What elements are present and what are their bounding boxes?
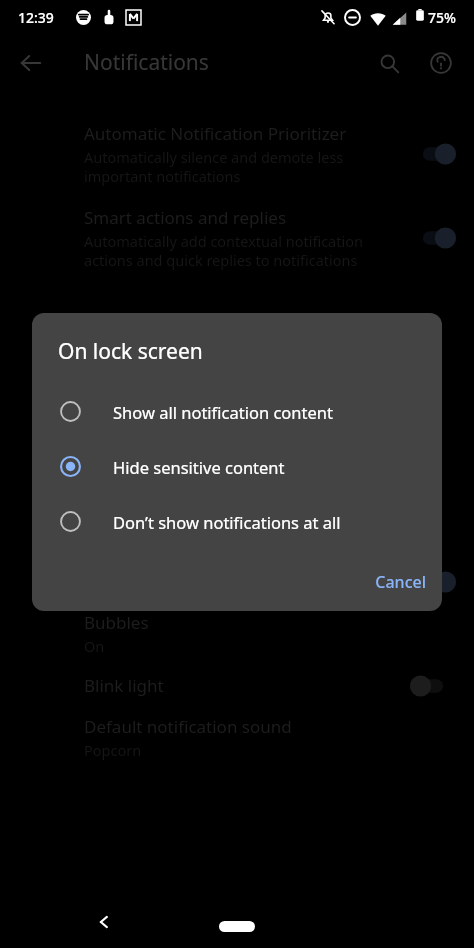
staticText: Show all notification content xyxy=(113,401,333,423)
button[interactable]: Back xyxy=(14,46,48,80)
staticText: Cancel xyxy=(375,571,426,593)
staticText: Default notification sound xyxy=(84,715,292,738)
button[interactable] xyxy=(410,571,456,593)
button[interactable] xyxy=(410,227,456,249)
button[interactable]: Home xyxy=(219,921,255,932)
button[interactable]: Don’t show notifications at all xyxy=(32,494,442,549)
staticText: Notifications xyxy=(84,48,209,77)
staticText: Don’t show notifications at all xyxy=(113,511,341,533)
button[interactable]: Allow notification dots xyxy=(0,570,474,593)
button[interactable]: Default notification sound xyxy=(0,715,474,760)
button[interactable]: Back xyxy=(84,902,124,942)
button[interactable]: Help xyxy=(424,46,458,80)
staticText: Smart actions and replies xyxy=(84,206,287,229)
staticText: Automatic Notification Prioritizer xyxy=(84,122,347,145)
button[interactable]: Hide sensitive content xyxy=(32,439,442,494)
button[interactable]: Search xyxy=(372,46,406,80)
staticText: Hide sensitive content xyxy=(113,456,285,478)
button[interactable]: Cancel xyxy=(359,563,442,601)
staticText: Popcorn xyxy=(84,740,142,760)
staticText: On xyxy=(84,636,105,656)
staticText: Automatically silence and demote less im… xyxy=(84,147,344,186)
staticText: Automatically add contextual notificatio… xyxy=(84,231,363,270)
staticText: On lock screen xyxy=(58,337,203,366)
staticText: Bubbles xyxy=(84,611,149,634)
button[interactable]: Blink light xyxy=(0,674,474,697)
button[interactable]: Smart actions and replies xyxy=(0,186,474,270)
staticText: 75% xyxy=(428,8,456,27)
button[interactable] xyxy=(410,143,456,165)
staticText: Blink light xyxy=(84,674,410,697)
staticText: Allow notification dots xyxy=(84,570,410,593)
button[interactable]: Show all notification content xyxy=(32,384,442,439)
staticText: 12:39 xyxy=(18,8,54,27)
button[interactable]: Automatic Notification Prioritizer xyxy=(0,100,474,186)
button[interactable] xyxy=(410,675,456,697)
